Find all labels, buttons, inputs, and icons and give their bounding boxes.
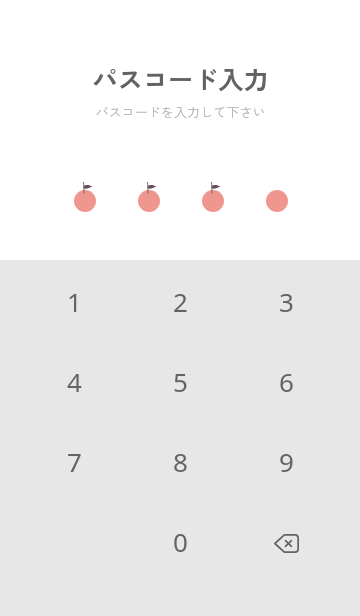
staticText: 5 [173,364,188,399]
staticText: 0 [173,524,188,559]
button[interactable]: 9 [233,421,339,501]
staticText: 9 [279,444,294,479]
button[interactable]: Backspace [233,501,339,581]
button[interactable]: 6 [233,341,339,421]
other: Backspace [274,534,299,553]
button[interactable]: 5 [127,341,233,421]
button[interactable]: 4 [21,341,127,421]
button[interactable]: 7 [21,421,127,501]
button[interactable]: 2 [127,261,233,341]
staticText: 2 [173,284,188,319]
staticText: パスコード入力 [92,60,269,96]
staticText: パスコードを入力して下さい [95,102,266,121]
button[interactable]: 3 [233,261,339,341]
button[interactable]: 8 [127,421,233,501]
staticText: 4 [67,364,82,399]
staticText: 1 [67,284,82,319]
staticText: 7 [67,444,82,479]
staticText: 6 [279,364,294,399]
button[interactable]: 0 [127,501,233,581]
staticText: 8 [173,444,188,479]
button[interactable]: 1 [21,261,127,341]
staticText: 3 [279,284,294,319]
